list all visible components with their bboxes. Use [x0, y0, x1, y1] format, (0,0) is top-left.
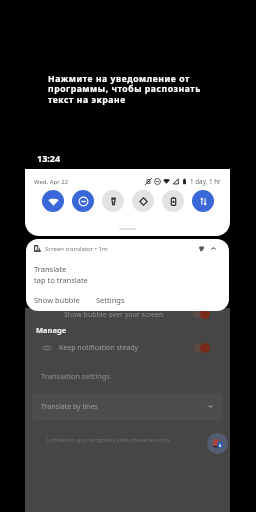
button[interactable]: Show bubble	[34, 295, 80, 305]
staticText: tap to translate	[34, 275, 88, 285]
staticText: Translate by lines	[41, 402, 98, 412]
button[interactable]: Flashlight	[102, 190, 124, 212]
staticText: Manage	[36, 325, 67, 335]
button[interactable]: Translate by lines	[32, 393, 223, 420]
staticText: Keep notification steady	[59, 343, 139, 353]
button[interactable]: Wi-Fi	[42, 190, 64, 212]
staticText: Translate	[34, 264, 67, 274]
staticText: Нажмите на уведомление от программы, что…	[48, 73, 201, 106]
button[interactable]: Battery saver	[162, 190, 184, 212]
button[interactable]: Translate	[207, 433, 228, 454]
staticText: Translation settings	[41, 371, 111, 381]
button[interactable]: Auto rotate	[132, 190, 154, 212]
button[interactable]: Collapse	[209, 244, 218, 253]
staticText: 13:24	[37, 152, 61, 164]
button[interactable]: Do not disturb	[72, 190, 94, 212]
staticText: Screen translator • 1m	[45, 245, 108, 253]
button[interactable]: Settings	[96, 295, 125, 305]
staticText: Wed, Apr 22	[34, 178, 69, 186]
staticText: Show bubble over your screen	[64, 310, 164, 320]
button[interactable]: Mobile data	[192, 190, 214, 212]
button[interactable]: Bubble	[197, 244, 206, 253]
button[interactable]: Screen translator • 1m	[26, 239, 229, 311]
staticText: Limitation: app recognizes Latin charact…	[47, 436, 171, 443]
staticText: 1 day, 1 hr	[190, 177, 221, 186]
